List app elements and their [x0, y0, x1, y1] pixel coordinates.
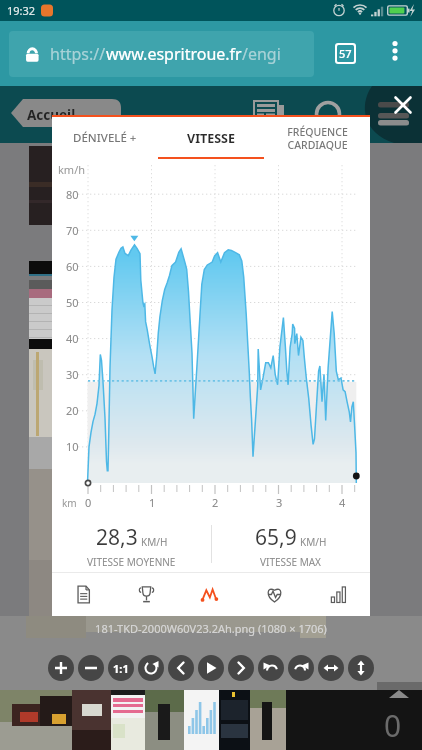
staticText: 181-TKD-2000W60V23.2Ah.png (1080 × 1706)	[0, 621, 422, 636]
button[interactable]: Lecture	[198, 655, 224, 681]
staticText: VITESSE	[187, 130, 235, 147]
button[interactable]: DÉNIVELÉ +	[52, 117, 158, 159]
staticText: 20	[66, 403, 79, 418]
button[interactable]: Vitesse	[178, 572, 242, 616]
staticText: 50	[66, 295, 79, 310]
staticText: 10	[66, 439, 79, 454]
button[interactable]: VITESSE	[158, 117, 264, 159]
button[interactable]: https://	[9, 31, 314, 77]
staticText: 40	[66, 331, 79, 346]
button[interactable]: Taille réelle	[108, 655, 134, 681]
staticText: DÉNIVELÉ +	[73, 130, 137, 146]
staticText: 57	[339, 46, 352, 61]
button[interactable]: Image 5	[368, 690, 403, 750]
button[interactable]: Records	[115, 572, 178, 616]
staticText: km	[62, 496, 77, 510]
button[interactable]: Suivant	[228, 655, 254, 681]
staticText: www.espritroue.fr	[106, 43, 242, 65]
button[interactable]: Ajuster hauteur	[348, 655, 374, 681]
staticText: https://	[50, 43, 106, 65]
button[interactable]: Précédent	[168, 655, 194, 681]
button[interactable]: Image 2	[144, 690, 183, 750]
staticText: 19:32	[7, 3, 36, 18]
staticText: 60	[66, 259, 79, 274]
button[interactable]: Image 3	[222, 690, 256, 750]
button[interactable]: 65,9	[211, 516, 370, 569]
button[interactable]: Fermer	[386, 88, 420, 122]
staticText: VITESSE MAX	[260, 555, 321, 569]
staticText: 3	[276, 495, 283, 510]
button[interactable]: Fréquence cardiaque	[242, 572, 306, 616]
button[interactable]: 28,3	[52, 516, 211, 569]
button[interactable]: Rétablir	[288, 655, 314, 681]
button[interactable]: Tabs, 57 open	[325, 33, 365, 73]
button[interactable]: Image 1	[0, 690, 72, 750]
button[interactable]: FRÉQUENCE CARDIAQUE	[264, 117, 370, 159]
staticText: Accueil	[27, 106, 76, 124]
staticText: km/h	[58, 162, 86, 177]
staticText: 4	[339, 495, 346, 510]
button[interactable]: Ajuster largeur	[318, 655, 344, 681]
staticText: 80	[66, 187, 79, 202]
staticText: /engi	[242, 43, 281, 65]
staticText: 0	[384, 705, 402, 746]
button[interactable]: Zoom avant	[48, 655, 74, 681]
staticText: KM/H	[300, 535, 327, 549]
staticText: 28,3	[96, 523, 138, 552]
staticText: VITESSE MOYENNE	[87, 555, 176, 569]
staticText: 70	[66, 223, 79, 238]
staticText: 0	[85, 495, 92, 510]
button[interactable]: Annuler	[258, 655, 284, 681]
staticText: 1:1	[113, 661, 129, 676]
staticText: 2	[212, 495, 219, 510]
staticText: 65,9	[255, 523, 297, 552]
button[interactable]: Pivoter	[138, 655, 164, 681]
staticText: 1	[149, 495, 156, 510]
staticText: KM/H	[141, 535, 168, 549]
button[interactable]: Statistiques	[306, 572, 370, 616]
button[interactable]: Détails	[52, 572, 115, 616]
button[interactable]: More options	[378, 33, 412, 67]
staticText: FRÉQUENCE CARDIAQUE	[287, 125, 348, 152]
button[interactable]: Zoom arrière	[78, 655, 104, 681]
staticText: 30	[66, 367, 79, 382]
